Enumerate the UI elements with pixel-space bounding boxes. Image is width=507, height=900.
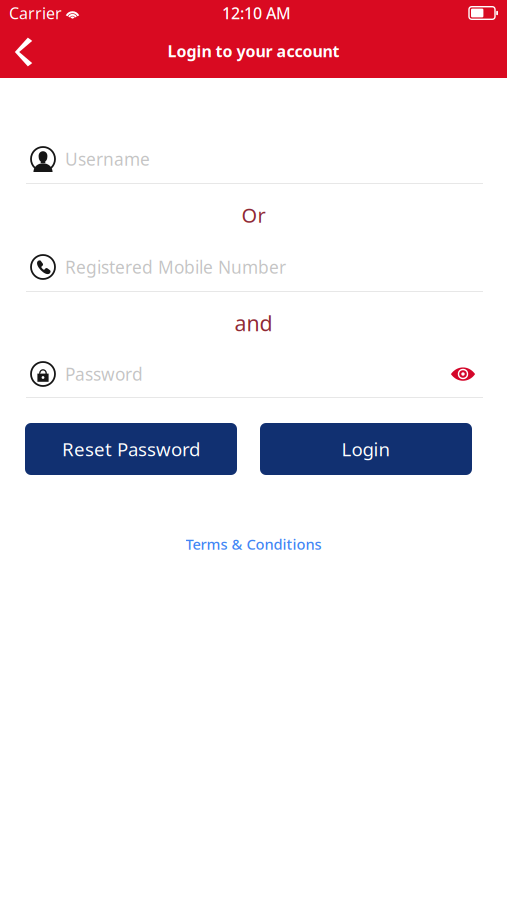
- button[interactable]: Show password: [446, 362, 480, 386]
- button[interactable]: Username: [0, 147, 507, 171]
- button[interactable]: Reset Password: [25, 423, 237, 475]
- staticText: Password: [65, 362, 143, 385]
- staticText: Terms & Conditions: [185, 534, 321, 554]
- button[interactable]: Back: [0, 26, 52, 78]
- staticText: Or: [241, 202, 265, 228]
- staticText: and: [234, 309, 272, 337]
- staticText: Login to your account: [167, 40, 339, 62]
- staticText: 12:10 AM: [222, 2, 291, 24]
- button[interactable]: Login: [260, 423, 472, 475]
- button[interactable]: Registered Mobile Number: [0, 255, 507, 279]
- staticText: Username: [65, 147, 150, 170]
- staticText: Carrier: [9, 2, 62, 24]
- staticText: Reset Password: [62, 437, 200, 461]
- staticText: Registered Mobile Number: [65, 255, 286, 278]
- staticText: Login: [341, 437, 390, 461]
- button[interactable]: Terms & Conditions: [185, 535, 321, 553]
- button[interactable]: Password: [0, 362, 446, 386]
